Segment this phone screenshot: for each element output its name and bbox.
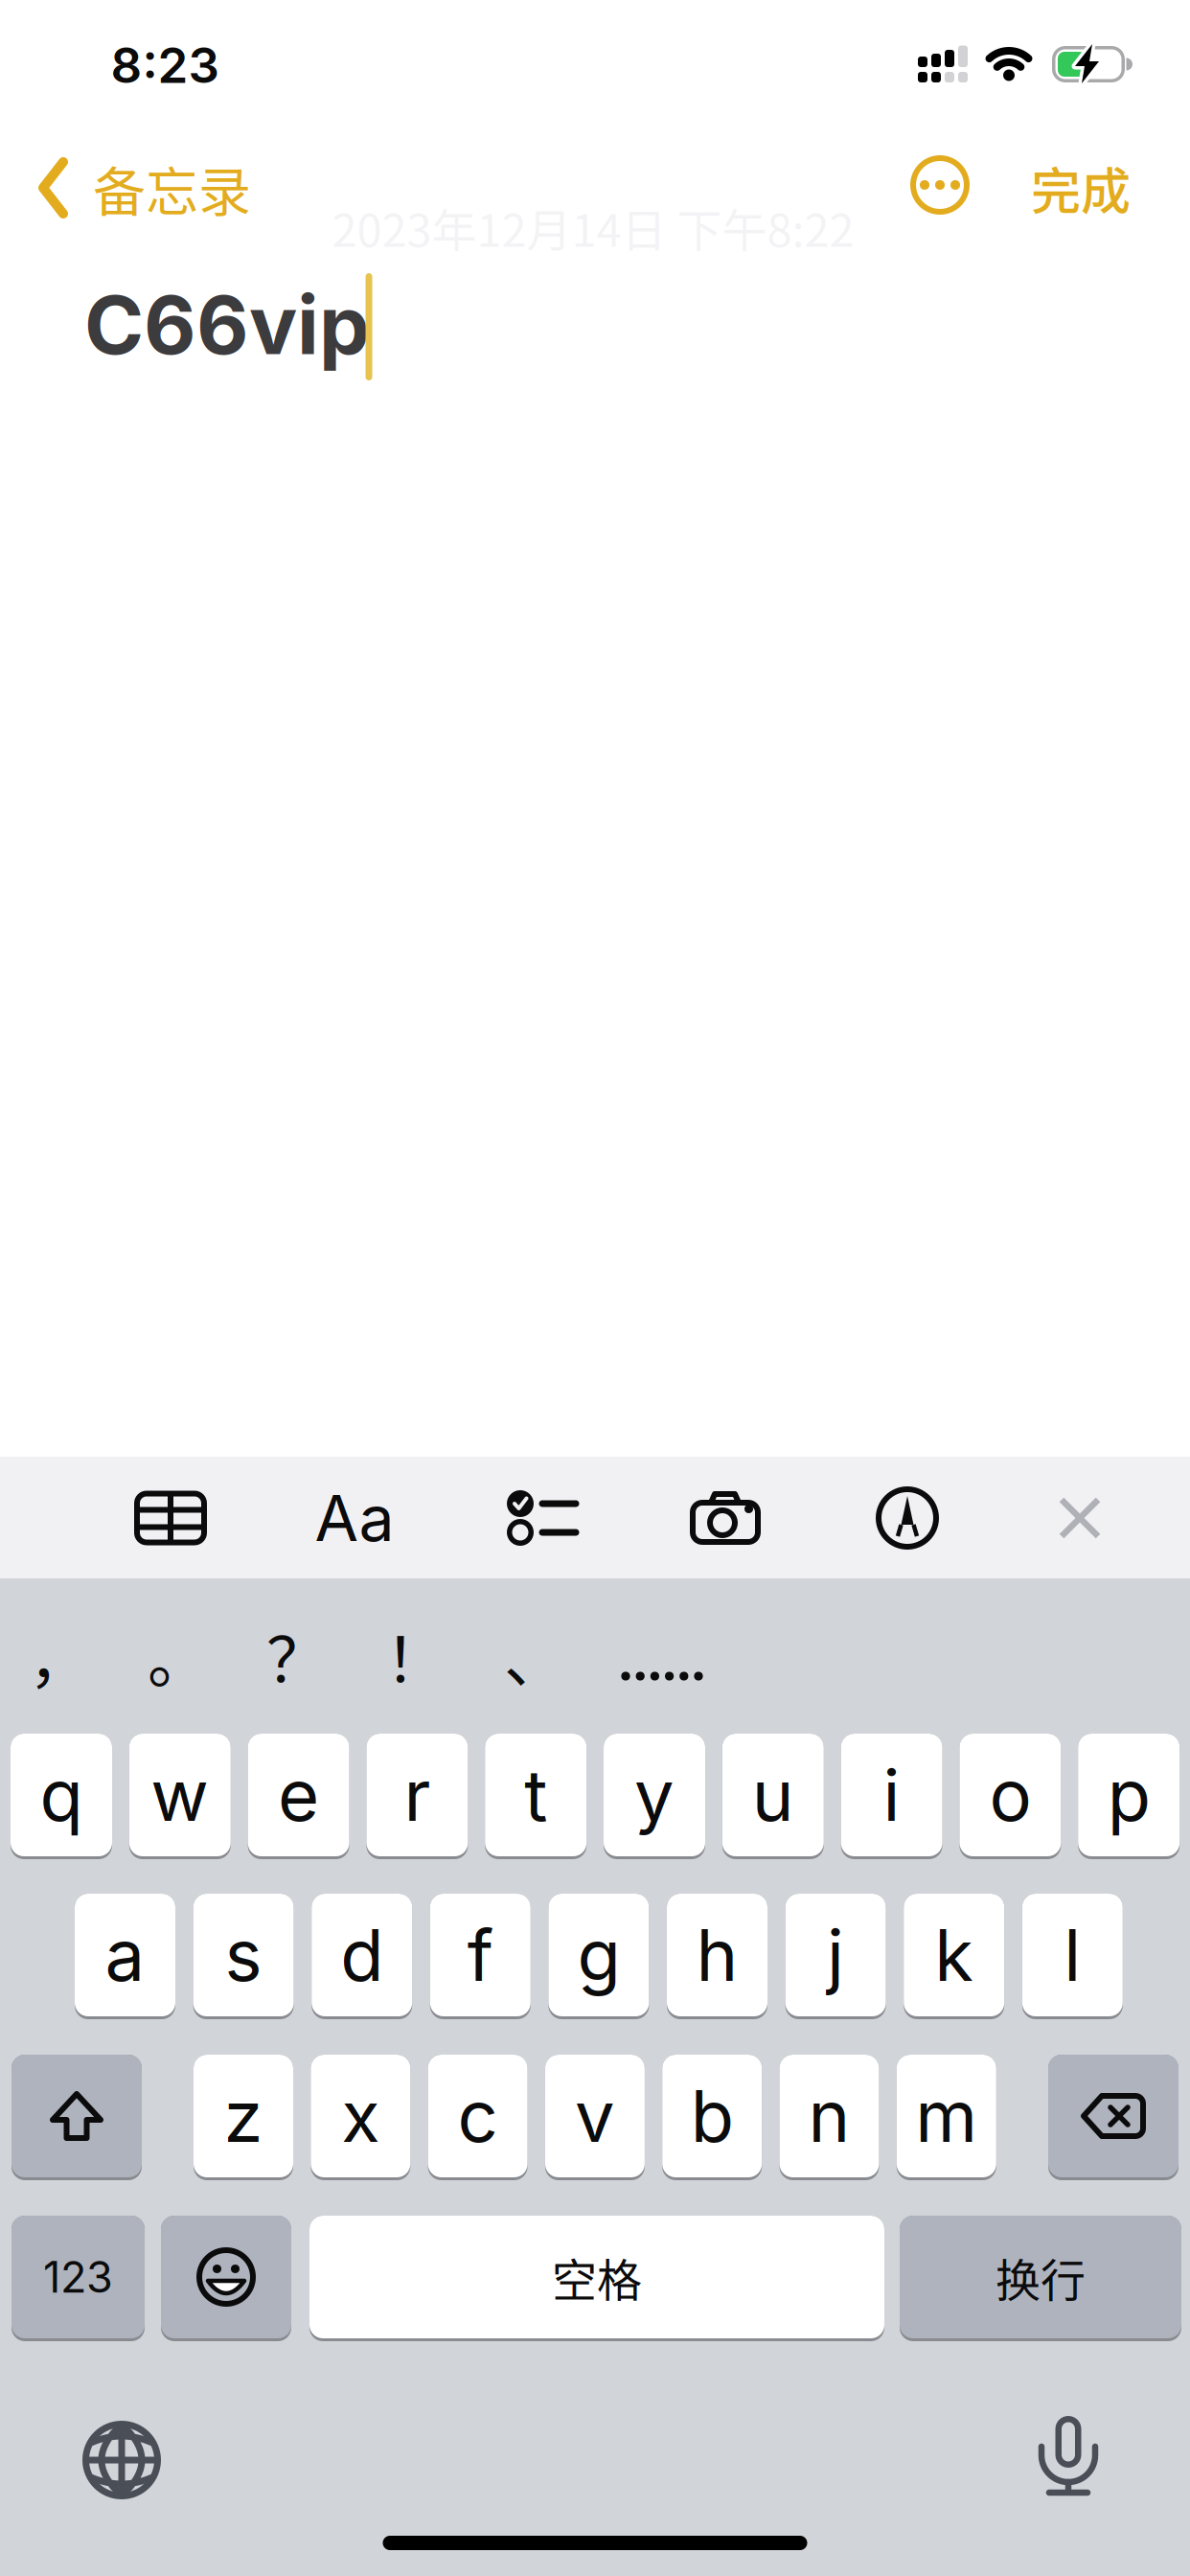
button[interactable]: 123 bbox=[11, 2216, 145, 2341]
staticText: 123 bbox=[43, 2251, 113, 2303]
button[interactable]: 。 bbox=[148, 1611, 209, 1700]
button[interactable]: Format bbox=[315, 1480, 394, 1556]
button[interactable]: a bbox=[75, 1894, 175, 2019]
staticText: b bbox=[691, 2073, 734, 2159]
button[interactable]: h bbox=[667, 1894, 767, 2019]
button[interactable]: x bbox=[311, 2055, 410, 2180]
button[interactable]: Dismiss keyboard bbox=[1059, 1497, 1101, 1539]
staticText: y bbox=[634, 1752, 675, 1838]
staticText: i bbox=[883, 1752, 900, 1838]
button[interactable]: Insert photo bbox=[690, 1491, 761, 1545]
button[interactable]: Dictate bbox=[1040, 2416, 1097, 2496]
button[interactable]: 换行 bbox=[900, 2216, 1181, 2341]
button[interactable]: Checklist bbox=[506, 1490, 577, 1546]
staticText: 2023年12月14日 下午8:22 bbox=[332, 195, 854, 260]
staticText: f bbox=[467, 1912, 493, 1998]
staticText: ！ bbox=[385, 1611, 446, 1700]
staticText: e bbox=[278, 1752, 319, 1838]
staticText: z bbox=[224, 2073, 263, 2159]
staticText: t bbox=[524, 1752, 547, 1838]
staticText: 换行 bbox=[995, 2244, 1086, 2310]
button[interactable]: q bbox=[11, 1734, 112, 1859]
staticText: o bbox=[989, 1752, 1031, 1838]
button[interactable]: d bbox=[312, 1894, 412, 2019]
staticText: 空格 bbox=[552, 2244, 642, 2310]
staticText: Aa bbox=[315, 1480, 394, 1556]
staticText: a bbox=[105, 1912, 145, 1998]
button[interactable]: v bbox=[545, 2055, 645, 2180]
button[interactable]: j bbox=[785, 1894, 886, 2019]
staticText: r bbox=[404, 1752, 431, 1838]
staticText: q bbox=[40, 1752, 83, 1838]
staticText: l bbox=[1064, 1912, 1081, 1998]
button[interactable]: n bbox=[779, 2055, 879, 2180]
staticText: d bbox=[340, 1912, 383, 1998]
button[interactable]: u bbox=[722, 1734, 824, 1859]
staticText: C66vip bbox=[84, 276, 370, 373]
staticText: 备忘录 bbox=[93, 150, 251, 226]
staticText: 。 bbox=[148, 1611, 209, 1700]
button[interactable]: More bbox=[910, 155, 970, 215]
button[interactable] bbox=[621, 1671, 703, 1681]
button[interactable]: m bbox=[897, 2055, 996, 2180]
button[interactable]: p bbox=[1078, 1734, 1180, 1859]
staticText: g bbox=[577, 1912, 620, 1998]
staticText: c bbox=[458, 2073, 498, 2159]
staticText: v bbox=[575, 2073, 615, 2159]
staticText: n bbox=[808, 2073, 850, 2159]
staticText: x bbox=[341, 2073, 380, 2159]
button[interactable]: w bbox=[129, 1734, 231, 1859]
button[interactable]: z bbox=[194, 2055, 293, 2180]
button[interactable]: k bbox=[904, 1894, 1004, 2019]
staticText: u bbox=[752, 1752, 794, 1838]
button[interactable]: 、 bbox=[504, 1611, 565, 1700]
button[interactable]: 空格 bbox=[309, 2216, 884, 2341]
button[interactable]: 备忘录 bbox=[38, 150, 251, 226]
button[interactable]: Insert table bbox=[134, 1491, 207, 1545]
staticText: m bbox=[915, 2073, 978, 2159]
staticText: p bbox=[1107, 1752, 1150, 1838]
staticText: s bbox=[225, 1912, 262, 1998]
button[interactable]: b bbox=[662, 2055, 762, 2180]
button[interactable]: o bbox=[959, 1734, 1061, 1859]
button[interactable]: Shift bbox=[11, 2055, 142, 2180]
button[interactable]: e bbox=[248, 1734, 349, 1859]
button[interactable]: f bbox=[430, 1894, 531, 2019]
button[interactable]: Next keyboard bbox=[82, 2421, 161, 2499]
staticText: w bbox=[151, 1752, 209, 1838]
staticText: j bbox=[827, 1912, 844, 1998]
button[interactable]: r bbox=[366, 1734, 468, 1859]
button[interactable]: ！ bbox=[385, 1611, 446, 1700]
button[interactable]: Delete bbox=[1048, 2055, 1179, 2180]
button[interactable]: s bbox=[193, 1894, 294, 2019]
staticText: 8:23 bbox=[111, 36, 219, 95]
staticText: 、 bbox=[504, 1611, 565, 1700]
staticText: ， bbox=[29, 1611, 90, 1700]
button[interactable]: ， bbox=[29, 1611, 90, 1700]
staticText: ？ bbox=[266, 1611, 328, 1700]
button[interactable]: i bbox=[841, 1734, 942, 1859]
button[interactable]: ？ bbox=[266, 1611, 328, 1700]
button[interactable]: l bbox=[1022, 1894, 1123, 2019]
button[interactable]: c bbox=[428, 2055, 528, 2180]
staticText: k bbox=[934, 1912, 974, 1998]
button[interactable]: Markup bbox=[876, 1486, 939, 1550]
button[interactable]: t bbox=[485, 1734, 587, 1859]
staticText: h bbox=[696, 1912, 738, 1998]
button[interactable]: Emoji bbox=[161, 2216, 291, 2341]
button[interactable]: y bbox=[604, 1734, 705, 1859]
button[interactable]: g bbox=[548, 1894, 649, 2019]
button[interactable]: 完成 bbox=[1031, 152, 1131, 224]
staticText: 完成 bbox=[1031, 152, 1131, 224]
